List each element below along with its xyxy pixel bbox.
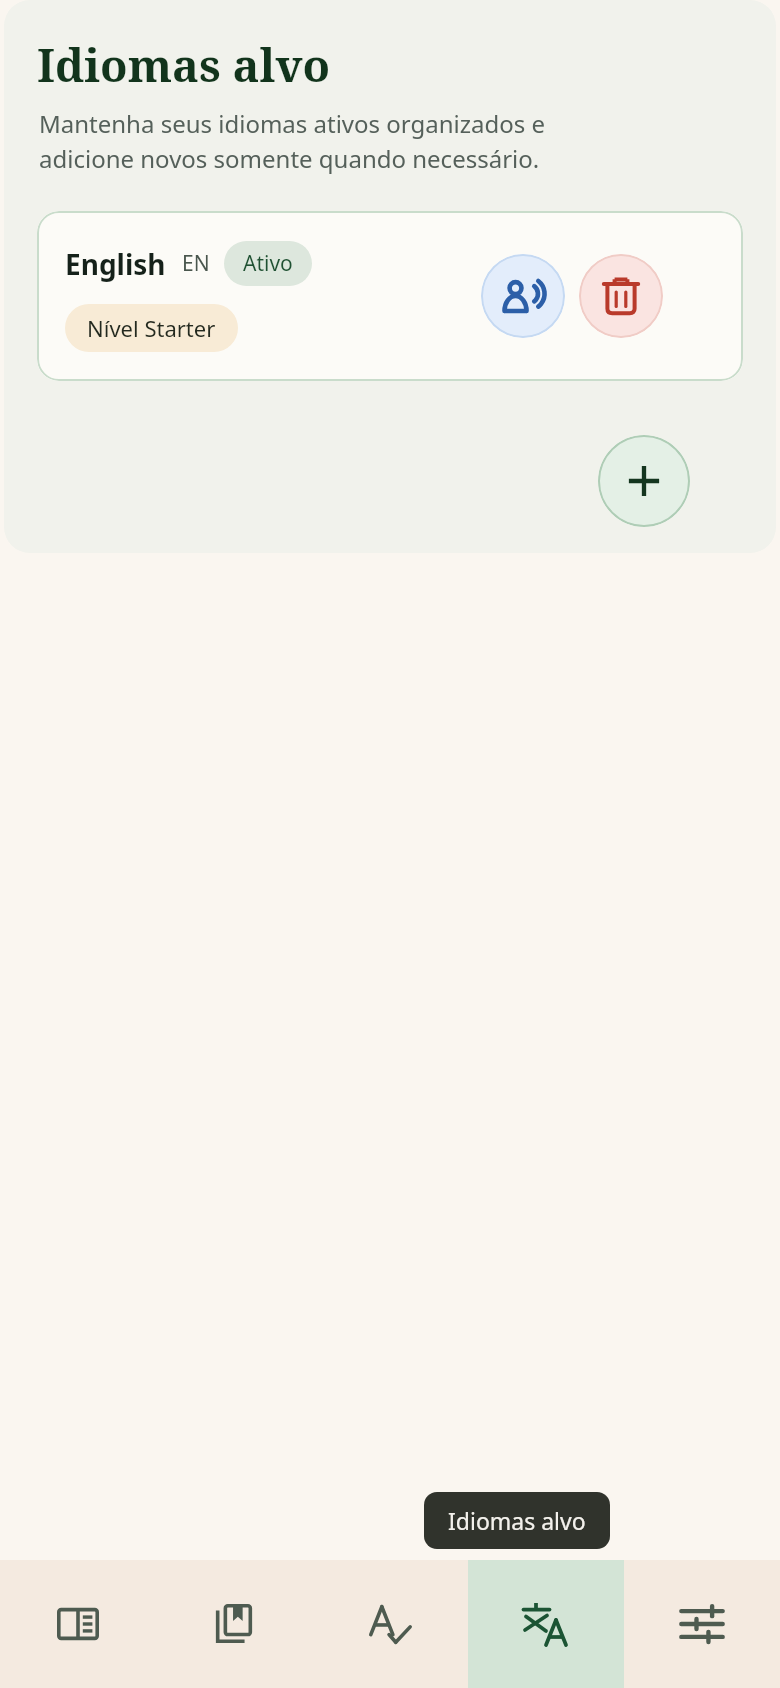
staticText: Idiomas alvo [37, 34, 331, 95]
staticText: Mantenha seus idiomas ativos organizados… [39, 107, 546, 175]
button[interactable]: Adicionar idioma [598, 435, 690, 527]
button[interactable]: Biblioteca [156, 1560, 312, 1688]
staticText: English [65, 245, 166, 283]
button[interactable]: English [37, 211, 743, 381]
staticText: Idiomas alvo [448, 1505, 586, 1536]
button[interactable]: Pronúncia [481, 254, 565, 338]
staticText: Nível Starter [87, 313, 216, 343]
staticText: Ativo [243, 249, 293, 278]
button[interactable]: Excluir [579, 254, 663, 338]
button[interactable]: Leitura [0, 1560, 156, 1688]
button[interactable]: Revisão [312, 1560, 468, 1688]
button[interactable]: Idiomas alvo [468, 1560, 624, 1688]
staticText: EN [182, 249, 210, 278]
button[interactable]: Ajustes [624, 1560, 780, 1688]
